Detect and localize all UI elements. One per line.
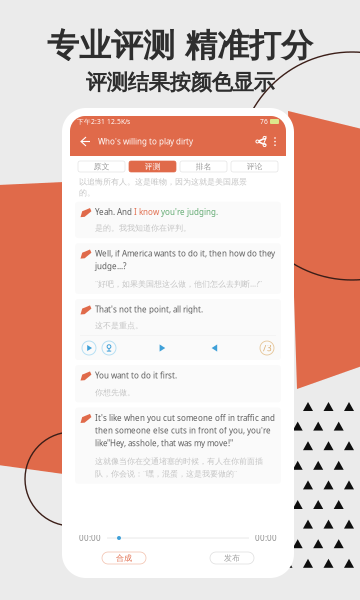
staticText: 队，你会说："嘿，混蛋，这是我要做的" bbox=[95, 468, 237, 479]
staticText: judge...? bbox=[95, 261, 126, 271]
staticText: 发布 bbox=[224, 553, 240, 563]
staticText: 73 bbox=[262, 343, 272, 353]
staticText: 评论 bbox=[246, 162, 262, 171]
staticText: You want to do it first. bbox=[95, 370, 177, 381]
staticText: 下午2:31 bbox=[77, 117, 105, 126]
staticText: I know bbox=[134, 207, 161, 217]
button[interactable]: 评测 bbox=[129, 161, 176, 172]
staticText: 这不是重点。 bbox=[95, 321, 143, 330]
staticText: you're judging. bbox=[161, 207, 218, 217]
staticText: 00:00 bbox=[255, 533, 277, 543]
staticText: 这就像当你在交通堵塞的时候，有人在你前面插 bbox=[95, 456, 263, 466]
button[interactable]: Play bbox=[82, 341, 96, 355]
button[interactable]: 原文 bbox=[78, 161, 125, 172]
button[interactable]: 合成 bbox=[102, 552, 146, 564]
staticText: "好吧，如果美国想这么做，他们怎么去判断...?" bbox=[95, 278, 262, 289]
staticText: like"Hey, asshole, that was my move!" bbox=[95, 438, 233, 448]
staticText: 专业评测 精准打分 bbox=[47, 26, 313, 65]
button[interactable]: Record bbox=[102, 341, 116, 355]
staticText: 排名 bbox=[195, 162, 211, 171]
staticText: Who's willing to play dirty bbox=[98, 136, 193, 147]
staticText: 12.5K/s bbox=[107, 117, 130, 126]
button[interactable]: Play recording bbox=[156, 342, 168, 354]
staticText: 以追悔所有人。这是唯物，因为这就是美国愿景 bbox=[79, 177, 247, 187]
staticText: Yeah. And bbox=[95, 207, 134, 217]
staticText: 是的。我我知道你在评判。 bbox=[95, 223, 191, 233]
staticText: 原文 bbox=[93, 162, 109, 171]
staticText: That's not the point, all right. bbox=[95, 304, 203, 315]
staticText: 合成 bbox=[116, 553, 132, 563]
staticText: 76 bbox=[260, 117, 268, 126]
staticText: then someone else cuts in front of you, … bbox=[95, 425, 271, 436]
button[interactable]: Previous bbox=[208, 342, 220, 354]
staticText: 的。 bbox=[79, 188, 95, 198]
staticText: Well, if America wants to do it, then ho… bbox=[95, 248, 275, 259]
staticText: 评测结果按颜色显示 bbox=[85, 69, 274, 95]
button[interactable]: Share bbox=[253, 130, 269, 152]
button[interactable]: 发布 bbox=[210, 552, 254, 564]
button[interactable]: 排名 bbox=[180, 161, 227, 172]
button[interactable]: 评论 bbox=[231, 161, 278, 172]
staticText: It's like when you cut someone off in tr… bbox=[95, 412, 275, 423]
button[interactable]: Back bbox=[75, 130, 95, 152]
staticText: 你想先做。 bbox=[95, 388, 135, 397]
staticText: 00:00 bbox=[79, 533, 101, 543]
staticText: 评测 bbox=[144, 162, 160, 171]
button[interactable]: More options bbox=[269, 130, 281, 152]
